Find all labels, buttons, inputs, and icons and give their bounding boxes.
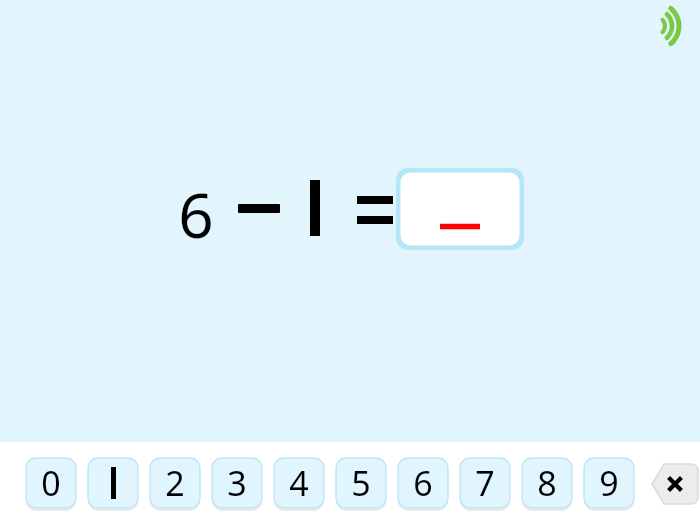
button[interactable]: Answer field [396, 168, 524, 250]
staticText: 5 [351, 460, 371, 506]
button[interactable]: 8 [522, 458, 572, 508]
button[interactable]: 4 [274, 458, 324, 508]
button[interactable] [88, 458, 138, 508]
button[interactable]: 3 [212, 458, 262, 508]
staticText: 3 [227, 460, 247, 506]
staticText: 9 [599, 460, 619, 506]
button[interactable]: Play sound [648, 4, 692, 48]
staticText: 6 [413, 460, 433, 506]
button[interactable]: 5 [336, 458, 386, 508]
button[interactable]: 0 [26, 458, 76, 508]
button[interactable]: 6 [398, 458, 448, 508]
staticText: 4 [289, 460, 309, 506]
button[interactable]: 9 [584, 458, 634, 508]
button[interactable]: 2 [150, 458, 200, 508]
staticText: 0 [41, 460, 61, 506]
button[interactable]: 7 [460, 458, 510, 508]
staticText: 2 [165, 460, 185, 506]
button[interactable]: Delete [652, 464, 698, 504]
staticText: 7 [475, 460, 495, 506]
staticText: 6 [172, 172, 220, 244]
staticText: 8 [537, 460, 557, 506]
